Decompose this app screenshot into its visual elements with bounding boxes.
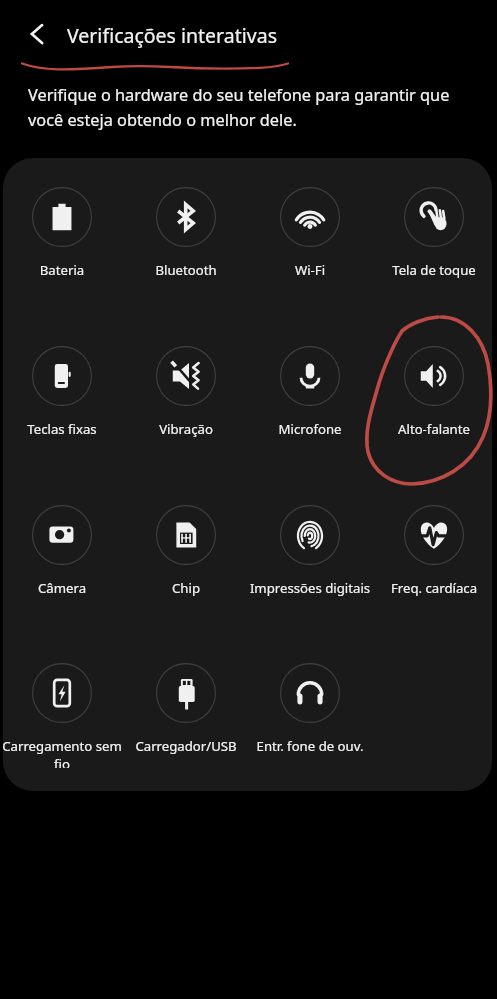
button[interactable]: Wi-Fi (248, 187, 372, 292)
staticText: Alto-falante (372, 420, 496, 438)
button[interactable]: Bluetooth (124, 187, 248, 292)
button[interactable]: Chip (124, 505, 248, 610)
button[interactable]: Tela de toque (372, 187, 496, 292)
staticText: Wi-Fi (248, 261, 372, 279)
staticText: Impressões digitais (248, 579, 372, 597)
button[interactable]: Entr. fone de ouv. (248, 663, 372, 768)
staticText: Microfone (248, 420, 372, 438)
button[interactable]: Microfone (248, 346, 372, 451)
staticText: Verificações interativas (67, 22, 277, 49)
staticText: Teclas fixas (0, 420, 124, 438)
staticText: Câmera (0, 579, 124, 597)
button[interactable]: Teclas fixas (0, 346, 124, 451)
staticText: Verifique o hardware do seu telefone par… (28, 84, 464, 131)
button[interactable]: Freq. cardíaca (372, 505, 496, 610)
staticText: Entr. fone de ouv. (248, 737, 372, 755)
staticText: Chip (124, 579, 248, 597)
staticText: Carregador/USB (124, 737, 248, 755)
button[interactable]: Bateria (0, 187, 124, 292)
button[interactable]: Carregamento sem fio (0, 663, 124, 768)
button[interactable]: Alto-falante (372, 346, 496, 451)
button[interactable]: Carregador/USB (124, 663, 248, 768)
staticText: Carregamento sem fio (0, 737, 124, 768)
staticText: Vibração (124, 420, 248, 438)
button[interactable]: Impressões digitais (248, 505, 372, 610)
button[interactable]: Câmera (0, 505, 124, 610)
staticText: Tela de toque (372, 261, 496, 279)
staticText: Bateria (0, 261, 124, 279)
staticText: Bluetooth (124, 261, 248, 279)
button[interactable]: Back (21, 19, 53, 51)
staticText: Freq. cardíaca (372, 579, 496, 597)
button[interactable]: Vibração (124, 346, 248, 451)
